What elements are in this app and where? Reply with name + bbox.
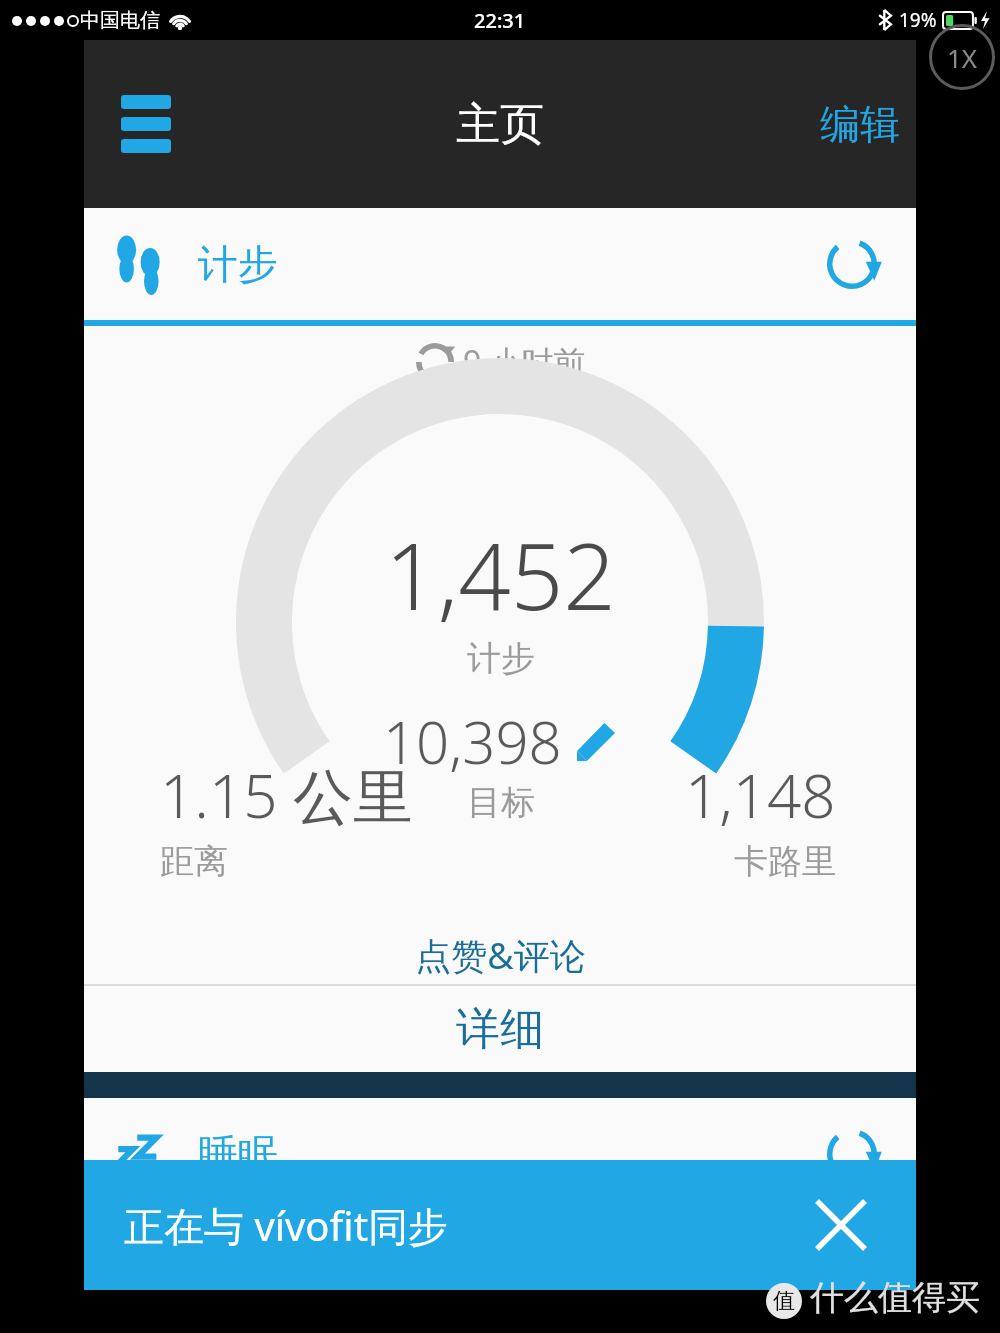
staticText: 什么值得买 — [810, 1276, 980, 1319]
staticText: 1,452 — [385, 512, 616, 637]
staticText: 睡眠 — [198, 1129, 278, 1179]
staticText: 目标 — [467, 781, 535, 824]
staticText: 19% — [899, 7, 937, 33]
button[interactable]: Close — [806, 1190, 876, 1260]
staticText: 值 — [773, 1287, 795, 1315]
staticText: 距离 — [160, 840, 228, 883]
staticText: 10,398 — [383, 702, 562, 781]
button[interactable]: Edit goal — [574, 720, 618, 764]
staticText: 卡路里 — [734, 840, 836, 883]
button[interactable]: Menu — [106, 84, 186, 164]
staticText: 1.15 公里 — [160, 754, 414, 836]
button[interactable]: Refresh — [820, 1122, 884, 1186]
staticText: 正在与 vívofit同步 — [124, 1198, 449, 1253]
staticText: 9 小时前 — [463, 340, 586, 384]
button[interactable]: 计步 — [84, 208, 916, 320]
button[interactable]: 睡眠 — [84, 1098, 916, 1210]
staticText: 主页 — [456, 97, 544, 152]
staticText: 中国电信 — [80, 8, 160, 33]
staticText: 1X — [947, 40, 978, 75]
staticText: 计步 — [467, 637, 535, 680]
staticText: 22:31 — [474, 7, 526, 34]
staticText: 点赞&评论 — [415, 931, 586, 980]
staticText: 1,148 — [685, 754, 836, 836]
staticText: 编辑 — [820, 99, 900, 149]
button[interactable]: 详细 — [84, 986, 916, 1072]
button[interactable]: 点赞&评论 — [84, 926, 916, 984]
button[interactable]: 编辑 — [820, 99, 900, 149]
button[interactable]: Refresh — [820, 232, 884, 296]
staticText: 详细 — [456, 1002, 544, 1057]
button[interactable]: 正在与 vívofit同步 — [84, 1160, 916, 1290]
staticText: 计步 — [198, 239, 278, 289]
